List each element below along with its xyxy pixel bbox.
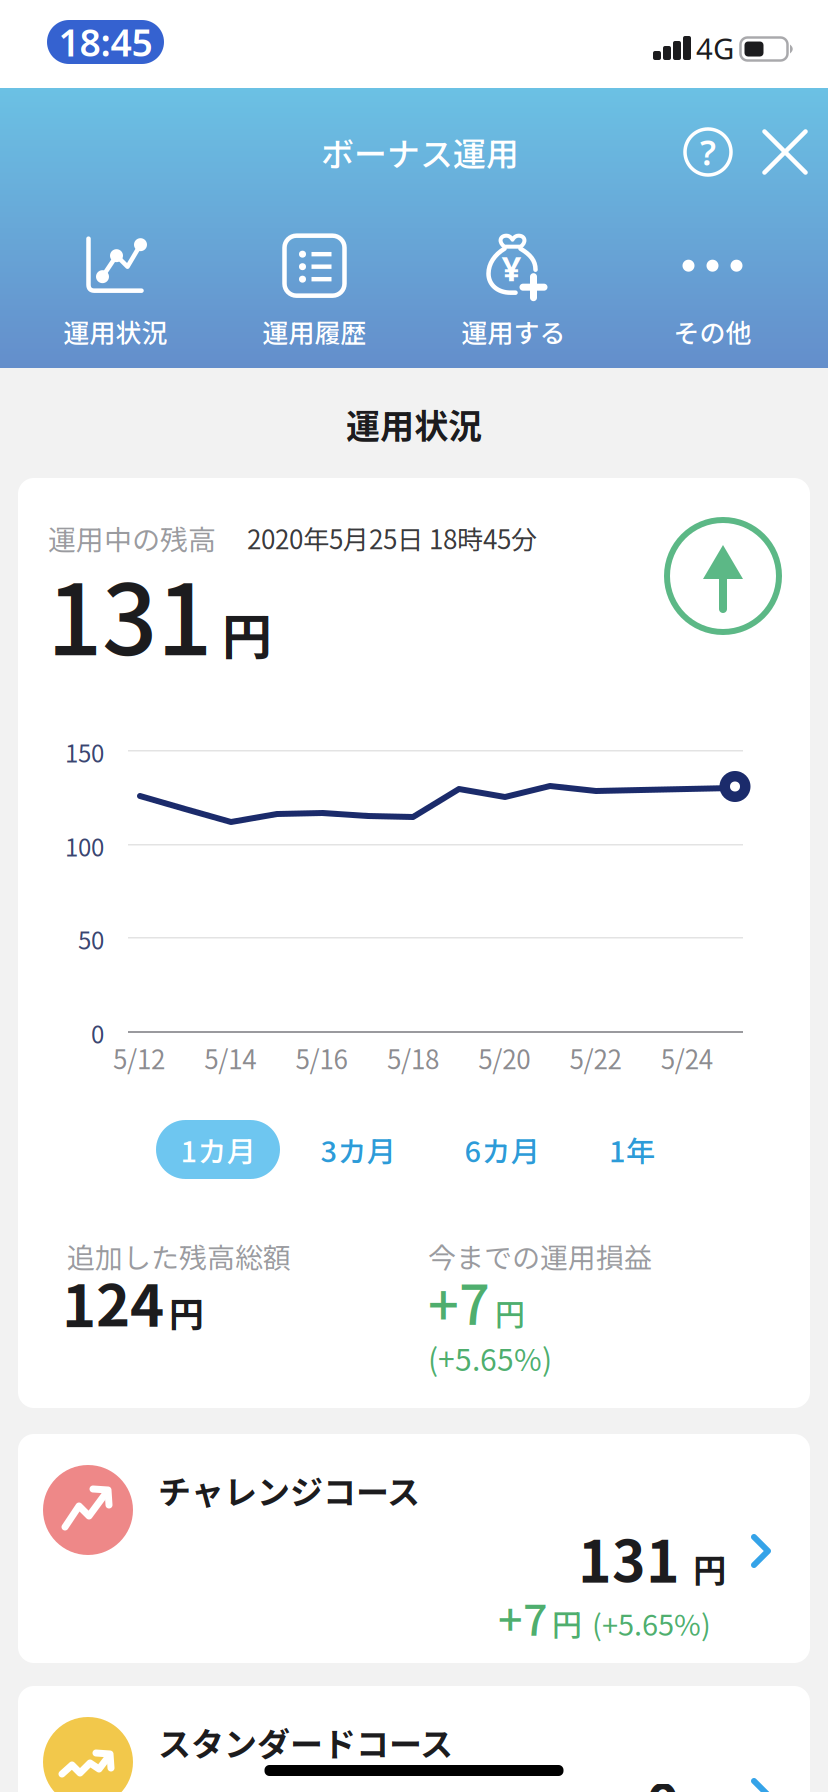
staticText: 運用履歴 [262, 313, 366, 350]
staticText: 今までの運用損益 [428, 1236, 652, 1276]
staticText: 50 [78, 922, 104, 956]
staticText: スタンダードコース [158, 1718, 453, 1766]
button[interactable]: ¥ [414, 234, 613, 350]
button[interactable]: ヘルプ [681, 125, 735, 179]
button[interactable]: 3カ月 [296, 1120, 420, 1179]
staticText: (+5.65%) [428, 1336, 552, 1380]
staticText: ボーナス運用 [321, 128, 519, 176]
staticText: ¥ [501, 245, 521, 291]
staticText: ? [700, 129, 716, 175]
staticText: 5/14 [204, 1039, 256, 1077]
staticText: 円 [693, 1545, 726, 1592]
staticText: 131 [578, 1517, 680, 1599]
button[interactable]: 閉じる [758, 125, 812, 179]
staticText: 運用状況 [346, 399, 482, 449]
button[interactable]: 運用履歴 [215, 234, 414, 350]
staticText: 運用する [461, 313, 565, 350]
staticText: 124 [62, 1260, 164, 1344]
staticText: 18:45 [58, 17, 152, 67]
staticText: 1カ月 [180, 1128, 255, 1170]
staticText: 追加した残高総額 [67, 1236, 291, 1276]
button[interactable]: スタンダードコース [18, 1686, 810, 1792]
staticText: 5/22 [569, 1039, 621, 1077]
staticText: 円 [495, 1291, 525, 1334]
button[interactable]: 6カ月 [440, 1120, 564, 1179]
staticText: 円 [169, 1287, 204, 1337]
staticText: 5/18 [387, 1039, 439, 1077]
button[interactable]: 1カ月 [156, 1120, 280, 1179]
staticText: その他 [673, 313, 751, 350]
staticText: 2020年5月25日 18時45分 [247, 519, 537, 557]
staticText: 運用中の残高 [48, 518, 216, 558]
staticText: 5/20 [478, 1039, 530, 1077]
staticText: 3カ月 [320, 1128, 395, 1170]
button[interactable]: チャレンジコース [18, 1434, 810, 1663]
staticText: +7 [428, 1263, 490, 1341]
staticText: +7 [498, 1586, 548, 1648]
staticText: 4G [696, 28, 734, 67]
staticText: 131 [47, 543, 212, 683]
staticText: 150 [65, 735, 104, 769]
staticText: (+5.65%) [586, 1602, 711, 1644]
staticText: 5/12 [113, 1039, 165, 1077]
staticText: 0 [646, 1761, 680, 1792]
button[interactable]: その他 [613, 234, 812, 350]
staticText: 6カ月 [464, 1128, 539, 1170]
staticText: 5/24 [661, 1039, 713, 1077]
staticText: チャレンジコース [158, 1466, 420, 1514]
staticText: 円 [222, 597, 272, 670]
staticText: 100 [65, 829, 104, 863]
staticText: 運用状況 [63, 313, 167, 350]
staticText: 0 [91, 1016, 104, 1050]
button[interactable]: 1年 [570, 1120, 694, 1179]
staticText: 円 [552, 1601, 582, 1644]
staticText: 5/16 [296, 1039, 348, 1077]
staticText: 1年 [609, 1128, 655, 1170]
button[interactable]: 運用状況 [16, 234, 215, 350]
